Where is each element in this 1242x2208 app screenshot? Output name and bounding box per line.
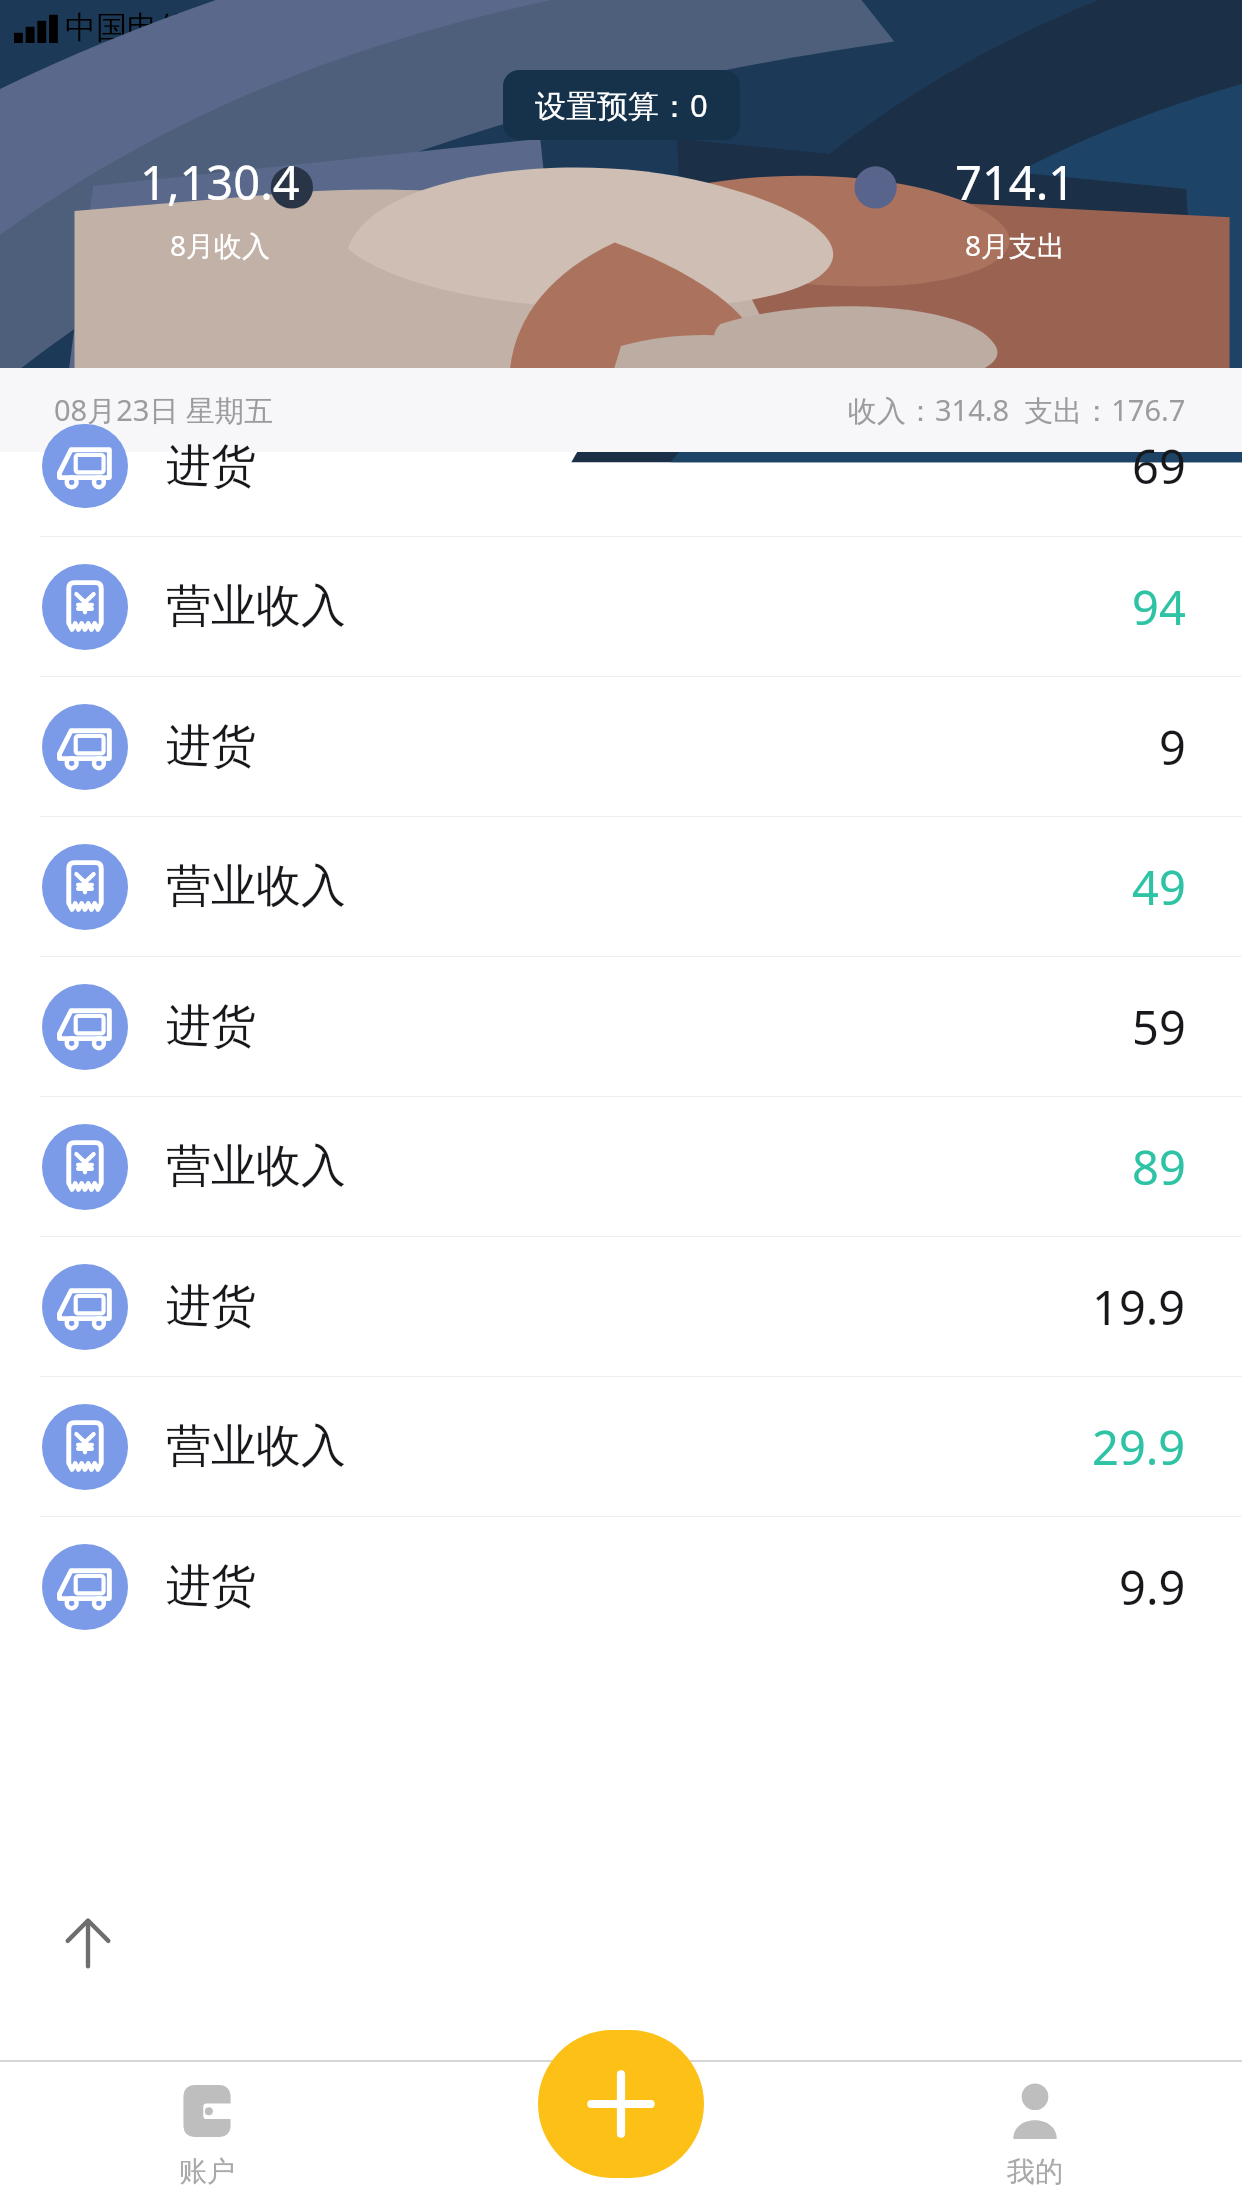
staticText: 8月收入	[170, 226, 271, 264]
button[interactable]: 营业收入	[0, 537, 1242, 676]
button[interactable]: Scroll to top	[33, 1887, 143, 1997]
staticText: 进货	[166, 718, 256, 775]
staticText: 营业收入	[166, 1138, 346, 1195]
staticText: 08月23日 星期五	[54, 390, 273, 430]
staticText: 49	[1132, 855, 1186, 919]
button[interactable]: 进货	[0, 957, 1242, 1096]
staticText: 进货	[166, 1558, 256, 1615]
staticText: 714.1	[955, 150, 1076, 214]
button[interactable]: 进货	[0, 1517, 1242, 1656]
staticText: 69	[1132, 434, 1186, 498]
button[interactable]: 进货	[0, 452, 1242, 536]
staticText: 收入：314.8 支出：176.7	[848, 390, 1186, 430]
button[interactable]: Profile	[828, 2060, 1242, 2208]
staticText: 19.9	[1092, 1275, 1186, 1339]
other: Profile	[1004, 2080, 1066, 2142]
staticText: 进货	[166, 1278, 256, 1335]
button[interactable]: Accounts	[0, 2060, 414, 2208]
staticText: 进货	[166, 438, 256, 495]
staticText: 中国电信	[65, 8, 189, 47]
button[interactable]: 营业收入	[0, 1377, 1242, 1516]
staticText: 营业收入	[166, 578, 346, 635]
staticText: 我的	[1007, 2154, 1063, 2189]
staticText: 89	[1132, 1135, 1186, 1199]
staticText: 8月支出	[965, 226, 1066, 264]
staticText: 9	[1159, 715, 1186, 779]
button[interactable]: 设置预算：0	[503, 70, 740, 140]
button[interactable]: 营业收入	[0, 1097, 1242, 1236]
button[interactable]: 08月23日 星期五	[0, 368, 1242, 452]
staticText: 94	[1132, 575, 1186, 639]
button[interactable]: Add record	[538, 2030, 704, 2178]
staticText: 设置预算：0	[535, 84, 708, 126]
staticText: 29.9	[1092, 1415, 1186, 1479]
staticText: 营业收入	[166, 1418, 346, 1475]
staticText: 营业收入	[166, 858, 346, 915]
button[interactable]: 进货	[0, 677, 1242, 816]
staticText: 9.9	[1119, 1555, 1186, 1619]
staticText: 进货	[166, 998, 256, 1055]
other: Accounts	[176, 2080, 238, 2142]
button[interactable]: 营业收入	[0, 817, 1242, 956]
staticText: 1,130.4	[140, 150, 300, 214]
button[interactable]: 进货	[0, 1237, 1242, 1376]
staticText: 账户	[179, 2154, 235, 2189]
staticText: 59	[1132, 995, 1186, 1059]
